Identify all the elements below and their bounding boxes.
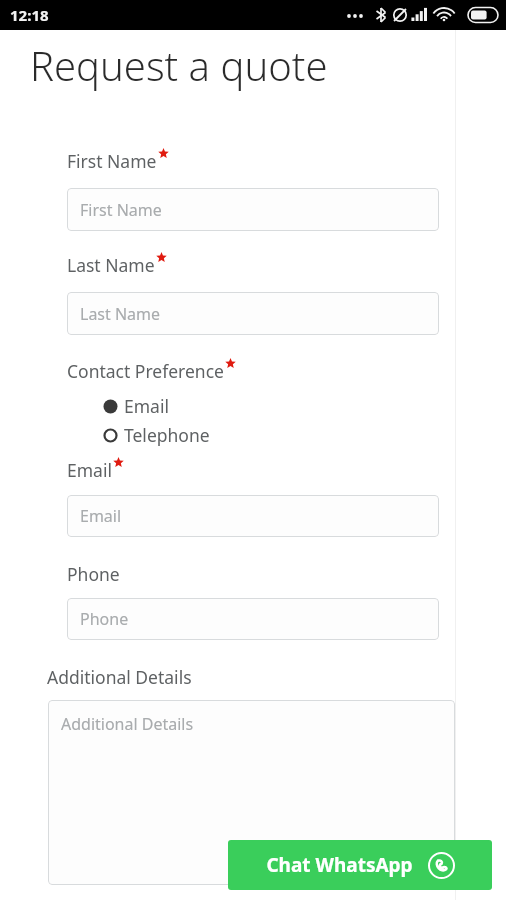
staticText: Chat WhatsApp [266, 852, 413, 878]
staticText: 12:18 [10, 5, 49, 25]
staticText: First Name [67, 149, 157, 173]
staticText: Email [124, 394, 169, 418]
staticText: Contact Preference [67, 359, 224, 383]
staticText: Additional Details [47, 665, 192, 689]
staticText: Last Name [80, 303, 161, 325]
staticText: Request a quote [30, 38, 328, 92]
button[interactable]: First Name [67, 188, 439, 231]
staticText: Additional Details [61, 713, 194, 735]
button[interactable]: Email [67, 495, 439, 537]
button[interactable]: Additional Details [48, 700, 455, 885]
staticText: Email [80, 505, 122, 527]
staticText: Telephone [124, 423, 210, 447]
staticText: Email [67, 458, 112, 482]
button[interactable]: Last Name [67, 292, 439, 335]
button[interactable]: Telephone [103, 423, 210, 447]
button[interactable]: Email [103, 394, 169, 418]
staticText: Phone [67, 562, 120, 586]
staticText: First Name [80, 199, 162, 221]
staticText: Phone [80, 608, 129, 630]
button[interactable]: Chat WhatsApp [228, 840, 492, 890]
staticText: Last Name [67, 253, 155, 277]
button[interactable]: Phone [67, 598, 439, 640]
